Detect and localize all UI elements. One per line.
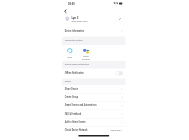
button[interactable]: Back: [63, 8, 70, 15]
button[interactable]: FAQ & Feedback: [63, 102, 127, 110]
button[interactable]: Add to Home Screen: [63, 110, 127, 118]
button[interactable]: Rename device: [63, 15, 127, 27]
button[interactable]: Device Information: [63, 27, 127, 37]
button[interactable]: Check Device Network: [63, 118, 127, 126]
button[interactable]: Offline Notification: [63, 61, 127, 71]
button[interactable]: Create Group: [63, 86, 127, 94]
button[interactable]: Smart Scenes and Automations: [63, 94, 127, 102]
button[interactable]: Share Device: [63, 78, 127, 86]
button[interactable]: Google Assistant: [82, 45, 94, 61]
button[interactable]: Alexa: [66, 45, 76, 61]
